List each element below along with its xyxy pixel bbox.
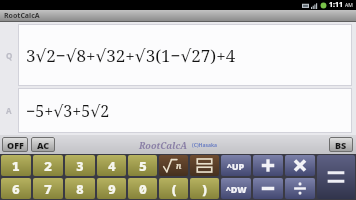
staticText: 9 <box>108 180 116 198</box>
button[interactable]: −5+√3+5√2 <box>18 88 352 133</box>
staticText: RootCalcA <box>4 11 40 21</box>
staticText: n <box>176 160 182 171</box>
button[interactable]: Divide <box>285 178 315 199</box>
staticText: 2 <box>44 157 52 175</box>
button[interactable]: 1 <box>1 155 31 176</box>
button[interactable]: 4 <box>97 155 126 176</box>
button[interactable]: 6 <box>1 178 31 199</box>
staticText: ^UP <box>227 160 245 172</box>
staticText: (C)Hasaka <box>192 142 218 149</box>
staticText: 5 <box>139 157 147 175</box>
button[interactable]: 9 <box>97 178 126 199</box>
button[interactable]: Equals <box>317 155 355 199</box>
button[interactable]: Fraction <box>190 155 219 176</box>
staticText: 4 <box>108 157 116 175</box>
staticText: 1 <box>12 157 20 175</box>
staticText: AC <box>37 139 50 151</box>
button[interactable]: Multiply <box>285 155 315 176</box>
button[interactable]: AC <box>31 137 55 152</box>
staticText: 3√2−√8+√32+√3(1−√27)+4 <box>26 44 236 67</box>
staticText: A <box>6 105 12 116</box>
button[interactable]: 3√2−√8+√32+√3(1−√27)+4 <box>18 24 352 86</box>
button[interactable]: 5 <box>128 155 157 176</box>
staticText: Q <box>6 50 13 61</box>
button[interactable]: ( <box>159 178 188 199</box>
staticText: 8 <box>76 180 84 198</box>
button[interactable]: ) <box>190 178 219 199</box>
button[interactable]: OFF <box>2 137 28 152</box>
button[interactable]: ^DW <box>221 178 251 199</box>
staticText: BS <box>335 139 347 151</box>
button[interactable]: 3 <box>65 155 95 176</box>
staticText: 0 <box>139 180 147 198</box>
staticText: OFF <box>7 139 24 151</box>
staticText: AM <box>345 2 353 9</box>
button[interactable]: BS <box>329 137 353 152</box>
staticText: 3 <box>76 157 84 175</box>
staticText: −5+√3+5√2 <box>26 100 110 122</box>
staticText: ^DW <box>226 183 247 195</box>
staticText: ( <box>170 180 178 198</box>
staticText: ) <box>201 180 209 198</box>
button[interactable]: 2 <box>33 155 63 176</box>
button[interactable]: 7 <box>33 178 63 199</box>
staticText: 6 <box>12 180 20 198</box>
staticText: 7 <box>44 180 52 198</box>
button[interactable]: Minus <box>253 178 283 199</box>
staticText: 1:11 <box>329 0 343 10</box>
button[interactable]: 8 <box>65 178 95 199</box>
button[interactable]: Plus <box>253 155 283 176</box>
button[interactable]: 0 <box>128 178 157 199</box>
button[interactable]: Square root <box>159 155 188 176</box>
button[interactable]: ^UP <box>221 155 251 176</box>
staticText: RootCalcA <box>139 139 187 151</box>
